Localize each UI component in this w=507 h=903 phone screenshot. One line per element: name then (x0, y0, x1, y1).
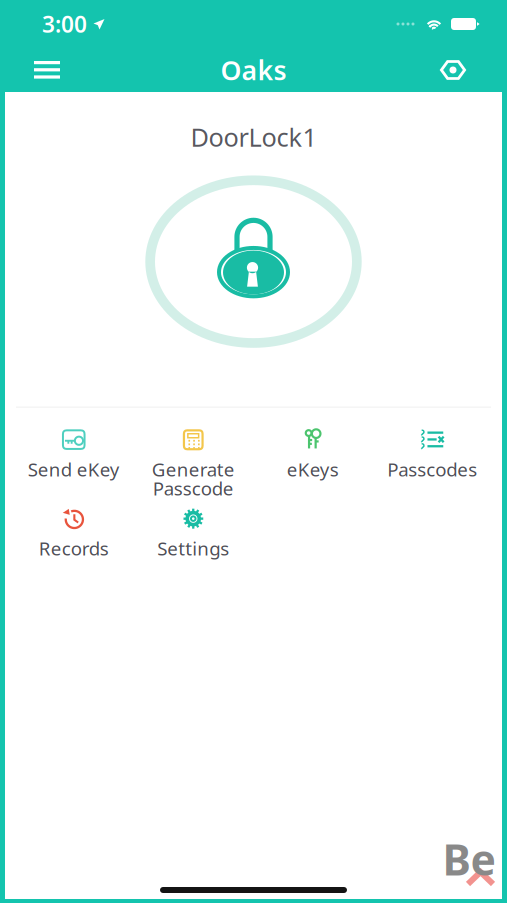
button[interactable]: eKeys (253, 418, 372, 497)
button[interactable]: Nearby locks (429, 48, 477, 92)
staticText: eKeys (287, 457, 339, 481)
staticText: Send eKey (28, 457, 120, 481)
staticText: Passcode (153, 476, 234, 500)
button[interactable]: Passcodes (372, 418, 492, 497)
staticText: 3:00 (42, 9, 87, 39)
button[interactable]: Menu (23, 48, 71, 92)
staticText: Passcodes (387, 457, 477, 481)
staticText: Settings (157, 536, 229, 560)
staticText: DoorLock1 (190, 120, 316, 154)
button[interactable]: Generate (133, 418, 253, 497)
staticText: Be (442, 831, 495, 887)
button[interactable]: Send eKey (14, 418, 133, 497)
staticText: Records (39, 536, 109, 560)
button[interactable]: Unlock DoorLock1 (144, 175, 362, 349)
staticText: Generate (152, 457, 235, 481)
staticText: Oaks (220, 52, 286, 88)
button[interactable]: Settings (133, 497, 253, 576)
button[interactable]: Records (14, 497, 133, 576)
